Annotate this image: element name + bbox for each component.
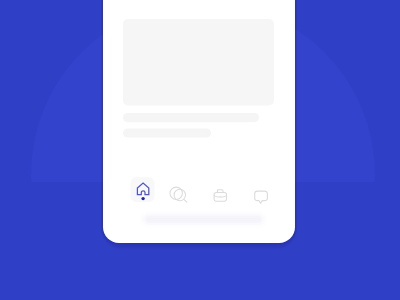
button[interactable]: Jobs	[206, 177, 234, 205]
button[interactable]: Search	[169, 177, 197, 205]
button[interactable]: Messages	[247, 177, 275, 205]
button[interactable]: Home	[129, 177, 157, 205]
